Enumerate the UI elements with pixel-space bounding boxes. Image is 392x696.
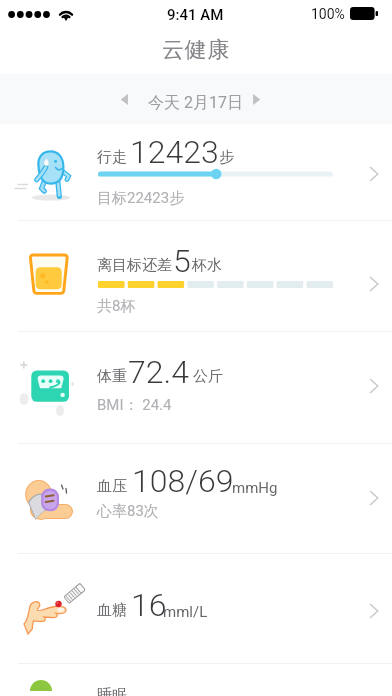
staticText: 杯水 xyxy=(192,256,222,275)
staticText: 血压 xyxy=(97,477,127,496)
staticText: 72.4 xyxy=(128,353,189,391)
staticText: BMI： 24.4 xyxy=(97,396,172,415)
staticText: 目标22423步 xyxy=(97,189,185,208)
button[interactable]: 血糖 xyxy=(0,554,392,663)
staticText: 公斤 xyxy=(193,367,223,386)
staticText: 16 xyxy=(131,586,167,624)
staticText: mml/L xyxy=(163,603,208,621)
staticText: 9:41 AM xyxy=(167,6,224,24)
staticText: 108/69 xyxy=(132,462,234,500)
staticText: 行走 xyxy=(97,148,127,167)
button[interactable]: Previous day xyxy=(108,83,140,115)
staticText: 今天 2月17日 xyxy=(148,93,243,113)
staticText: 步 xyxy=(219,148,234,167)
staticText: 血糖 xyxy=(97,601,127,620)
staticText: 体重 xyxy=(97,367,127,386)
staticText: 云健康 xyxy=(162,36,230,64)
staticText: 共8杯 xyxy=(97,297,136,316)
button[interactable]: 睡眠 xyxy=(0,664,392,696)
button[interactable]: 血压 xyxy=(0,444,392,553)
staticText: 12423 xyxy=(130,133,219,171)
staticText: 心率83次 xyxy=(97,502,159,521)
staticText: 100% xyxy=(311,6,345,22)
staticText: 离目标还差 xyxy=(97,256,172,275)
staticText: 5 xyxy=(173,242,191,280)
staticText: mmHg xyxy=(232,479,278,497)
button[interactable]: 12423 xyxy=(0,124,392,220)
button[interactable]: 离目标还差 xyxy=(0,221,392,331)
button[interactable]: 体重 xyxy=(0,332,392,443)
button[interactable]: Next day xyxy=(240,83,272,115)
staticText: 睡眠 xyxy=(97,686,127,696)
